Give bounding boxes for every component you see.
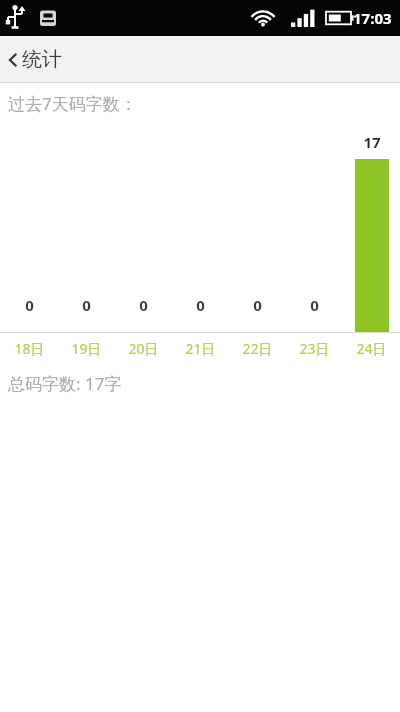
staticText: 0 [196, 295, 205, 315]
button[interactable]: 0 [229, 132, 286, 332]
button[interactable]: 0 [115, 132, 172, 332]
staticText: 20日 [128, 339, 159, 358]
staticText: 17:03 [353, 8, 392, 28]
button[interactable]: 0 [58, 132, 115, 332]
staticText: 过去7天码字数： [8, 92, 137, 115]
staticText: 24日 [356, 339, 387, 358]
button[interactable]: 0 [172, 132, 229, 332]
staticText: 21日 [185, 339, 216, 358]
button[interactable]: 0 [286, 132, 343, 332]
staticText: 23日 [299, 339, 330, 358]
staticText: 0 [253, 295, 262, 315]
button[interactable]: Back [0, 36, 78, 83]
staticText: 总码字数: 17字 [8, 372, 122, 395]
staticText: 0 [25, 295, 34, 315]
staticText: 0 [139, 295, 148, 315]
staticText: 0 [310, 295, 319, 315]
button[interactable]: 17 [343, 132, 400, 332]
staticText: 0 [82, 295, 91, 315]
button[interactable]: 0 [0, 132, 58, 332]
other: Back [6, 50, 19, 70]
staticText: 18日 [14, 339, 45, 358]
staticText: 22日 [242, 339, 273, 358]
staticText: 19日 [71, 339, 102, 358]
staticText: 统计 [22, 47, 62, 72]
staticText: 17 [363, 132, 381, 152]
